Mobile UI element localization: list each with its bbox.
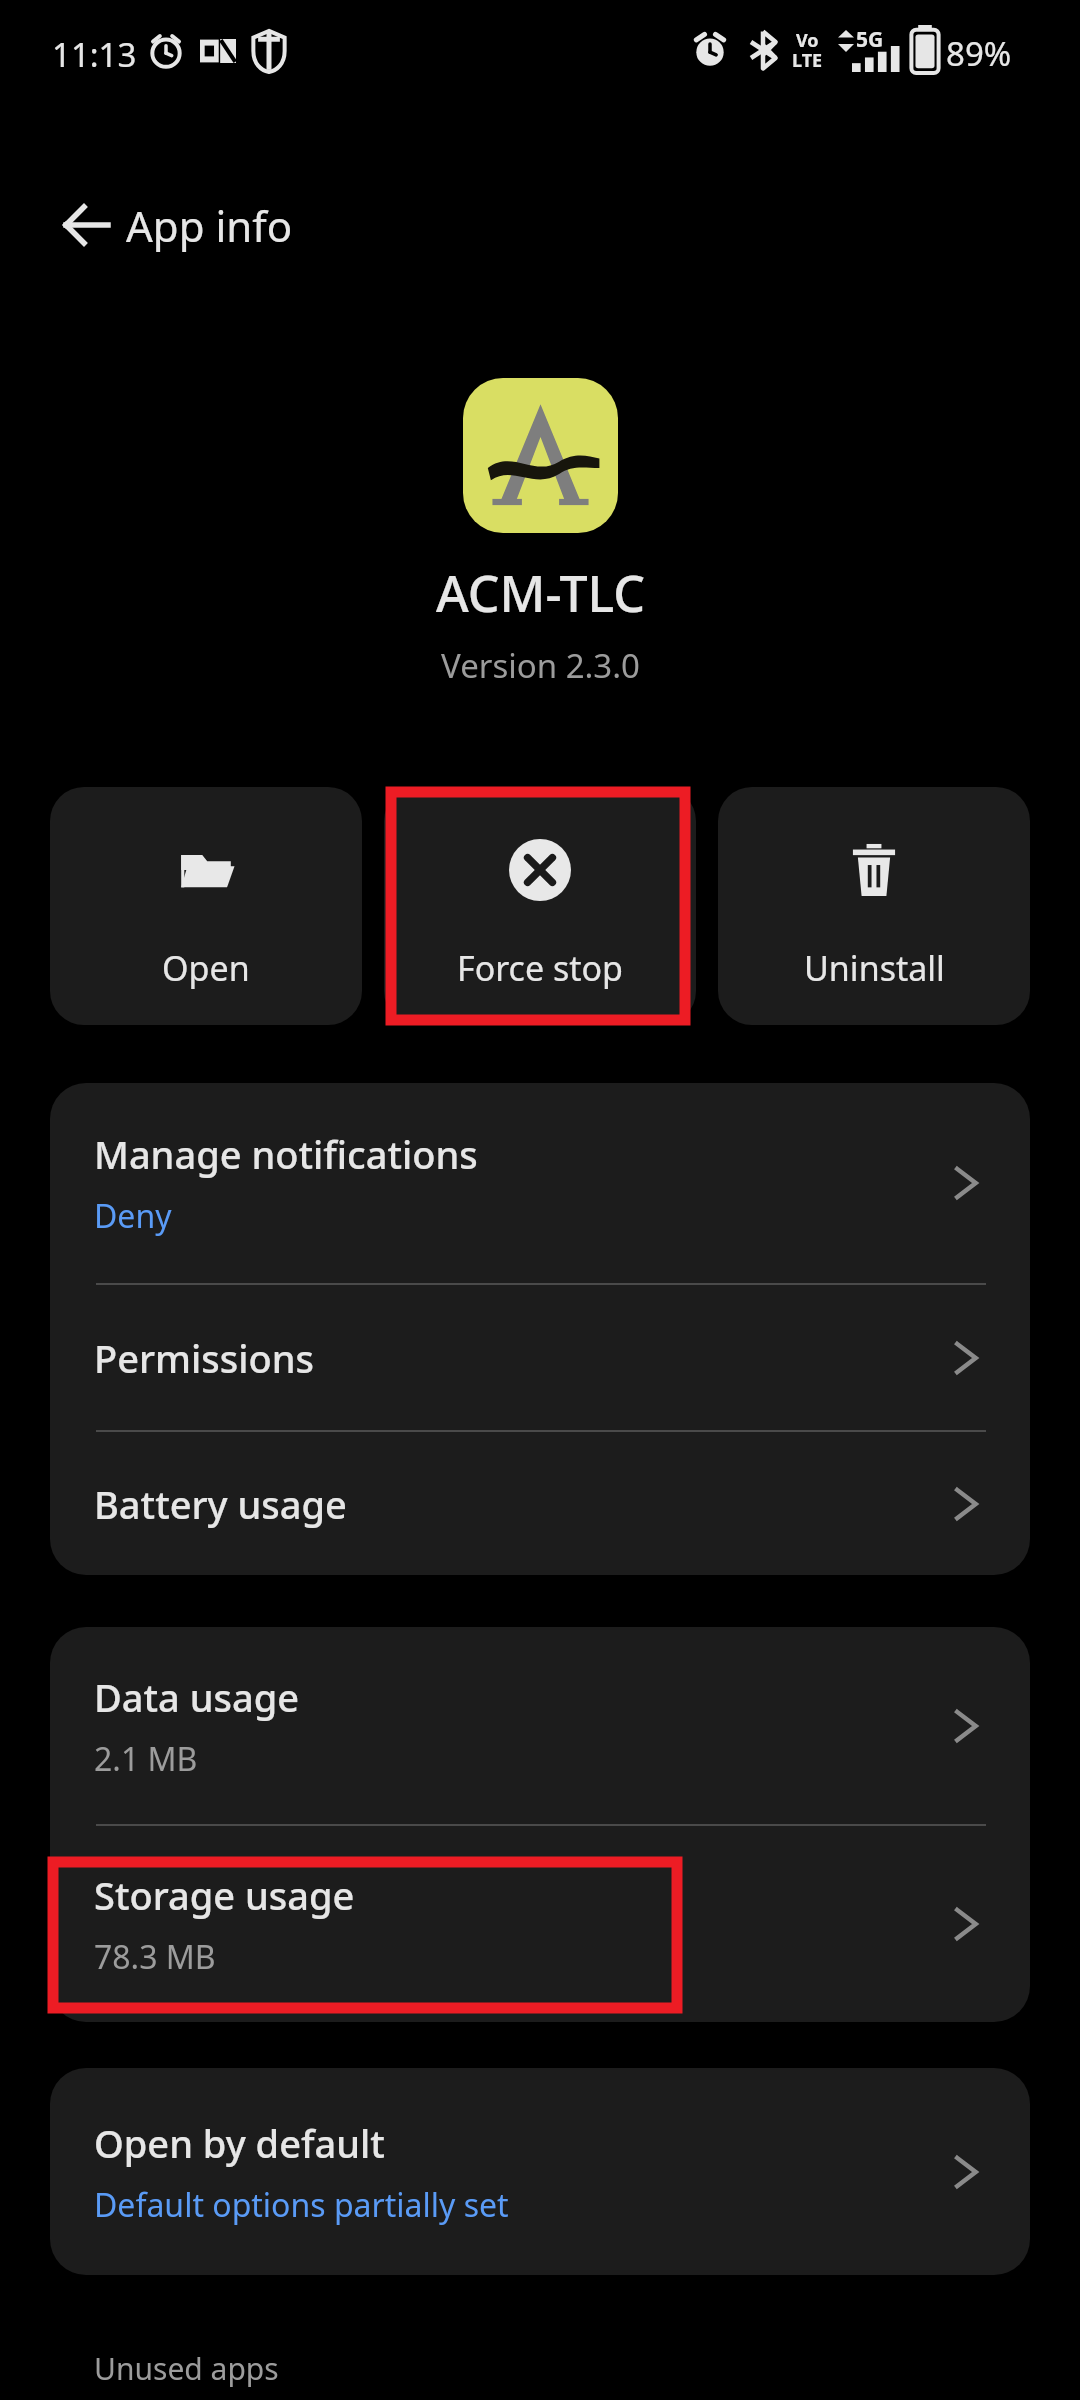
button[interactable]: Back [44, 183, 128, 267]
staticText: Default options partially set [94, 2183, 509, 2227]
button[interactable]: Permissions [50, 1285, 1030, 1430]
staticText: LTE [792, 48, 823, 73]
button[interactable]: Manage notifications [50, 1083, 1030, 1283]
staticText: Force stop [457, 945, 623, 991]
staticText: Storage usage [94, 1869, 355, 1921]
button[interactable]: Data usage [50, 1627, 1030, 1824]
staticText: 5G [856, 25, 884, 54]
button[interactable]: Uninstall [718, 787, 1030, 1025]
staticText: Open by default [94, 2117, 385, 2169]
staticText: 2.1 MB [94, 1737, 198, 1781]
staticText: Vo [796, 28, 819, 53]
button[interactable]: Open by default [50, 2068, 1030, 2275]
staticText: Open [162, 945, 250, 991]
staticText: Uninstall [804, 945, 945, 991]
button[interactable]: Battery usage [50, 1432, 1030, 1575]
staticText: App info [126, 197, 293, 254]
staticText: 11:13 [52, 32, 137, 77]
button[interactable]: Force stop [384, 787, 696, 1025]
staticText: Deny [94, 1194, 172, 1238]
staticText: ACM-TLC [436, 559, 645, 627]
staticText: Battery usage [94, 1478, 347, 1530]
button[interactable]: Storage usage [50, 1826, 1030, 2022]
staticText: 89% [946, 31, 1012, 76]
staticText: Version 2.3.0 [441, 643, 640, 688]
staticText: Permissions [94, 1332, 315, 1384]
button[interactable]: Open [50, 787, 362, 1025]
staticText: Manage notifications [94, 1128, 478, 1180]
staticText: 78.3 MB [94, 1935, 216, 1979]
staticText: Unused apps [94, 2348, 279, 2389]
staticText: Data usage [94, 1671, 300, 1723]
